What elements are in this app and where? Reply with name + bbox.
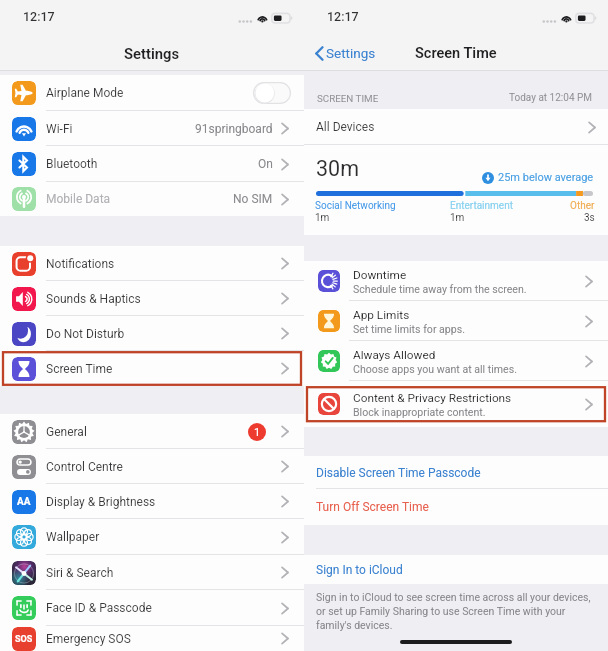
- staticText: Mobile Data: [46, 192, 233, 206]
- button[interactable]: 30m: [304, 145, 608, 235]
- staticText: Sign in to iCloud to see screen time acr…: [316, 591, 594, 632]
- button[interactable]: AA: [0, 484, 304, 519]
- staticText: On: [258, 157, 273, 171]
- staticText: 1: [254, 426, 261, 439]
- button[interactable]: Control Centre: [0, 449, 304, 484]
- button[interactable]: General: [0, 414, 304, 449]
- staticText: Siri & Search: [46, 566, 281, 580]
- staticText: Display & Brightness: [46, 495, 281, 509]
- staticText: Block inappropriate content.: [353, 406, 486, 418]
- staticText: 12:17: [327, 9, 359, 24]
- staticText: SOS: [15, 634, 33, 645]
- button[interactable]: Downtime: [304, 261, 608, 301]
- staticText: Bluetooth: [46, 157, 258, 171]
- button[interactable]: Do Not Disturb: [0, 316, 304, 351]
- button[interactable]: Wi-Fi: [0, 111, 304, 146]
- staticText: Do Not Disturb: [46, 327, 281, 341]
- button[interactable]: Notifications: [0, 246, 304, 281]
- staticText: Choose apps you want at all times.: [353, 363, 518, 375]
- button[interactable]: All Devices: [304, 109, 608, 145]
- staticText: Set time limits for apps.: [353, 323, 466, 335]
- staticText: 30m: [316, 156, 360, 181]
- staticText: Other: [570, 200, 595, 212]
- staticText: Social Networking: [315, 200, 396, 212]
- staticText: General: [46, 425, 248, 439]
- staticText: Settings: [326, 45, 376, 61]
- staticText: 91springboard: [195, 122, 273, 136]
- staticText: All Devices: [316, 120, 588, 134]
- staticText: SCREEN TIME: [317, 93, 379, 104]
- staticText: Downtime: [353, 268, 407, 282]
- staticText: 1m: [315, 212, 330, 224]
- staticText: Screen Time: [415, 45, 497, 62]
- staticText: Today at 12:04 PM: [509, 92, 593, 104]
- button[interactable]: Settings: [0, 30, 304, 70]
- button[interactable]: App Limits: [304, 301, 608, 341]
- button[interactable]: Face ID & Passcode: [0, 590, 304, 626]
- staticText: Turn Off Screen Time: [316, 500, 429, 514]
- staticText: Always Allowed: [353, 348, 436, 362]
- staticText: Wi-Fi: [46, 122, 195, 136]
- staticText: Content & Privacy Restrictions: [353, 391, 512, 405]
- button[interactable]: Sounds & Haptics: [0, 281, 304, 316]
- button[interactable]: Mobile Data: [0, 182, 304, 216]
- staticText: Airplane Mode: [46, 86, 251, 100]
- button[interactable]: Always Allowed: [304, 341, 608, 381]
- button[interactable]: Back: [312, 42, 379, 64]
- staticText: App Limits: [353, 308, 410, 322]
- staticText: Sounds & Haptics: [46, 292, 281, 306]
- staticText: Disable Screen Time Passcode: [316, 466, 481, 480]
- button[interactable]: Screen Time: [0, 351, 304, 386]
- staticText: 25m below average: [498, 171, 594, 184]
- button[interactable]: Sign In to iCloud: [304, 555, 608, 584]
- staticText: 3s: [584, 212, 595, 224]
- staticText: Face ID & Passcode: [46, 601, 281, 615]
- button[interactable]: Airplane Mode: [0, 75, 304, 111]
- button[interactable]: SOS: [0, 626, 304, 651]
- button[interactable]: Wallpaper: [0, 519, 304, 555]
- staticText: AA: [17, 496, 31, 508]
- staticText: No SIM: [233, 192, 273, 206]
- staticText: Emergency SOS: [46, 632, 281, 646]
- staticText: Settings: [124, 45, 180, 62]
- button[interactable]: Content & Privacy Restrictions: [304, 381, 608, 427]
- button[interactable]: Turn Off Screen Time: [304, 489, 608, 525]
- button[interactable]: Airplane Mode toggle: [253, 82, 291, 104]
- staticText: Entertainment: [450, 200, 513, 212]
- staticText: 12:17: [23, 9, 55, 24]
- staticText: Wallpaper: [46, 530, 281, 544]
- staticText: Notifications: [46, 257, 281, 271]
- staticText: 1m: [450, 212, 465, 224]
- other: Back: [315, 46, 324, 61]
- staticText: Screen Time: [46, 362, 281, 376]
- staticText: Schedule time away from the screen.: [353, 283, 527, 295]
- button[interactable]: Bluetooth: [0, 146, 304, 182]
- staticText: Sign In to iCloud: [316, 563, 403, 577]
- staticText: Control Centre: [46, 460, 281, 474]
- button[interactable]: Disable Screen Time Passcode: [304, 456, 608, 489]
- button[interactable]: Siri & Search: [0, 555, 304, 590]
